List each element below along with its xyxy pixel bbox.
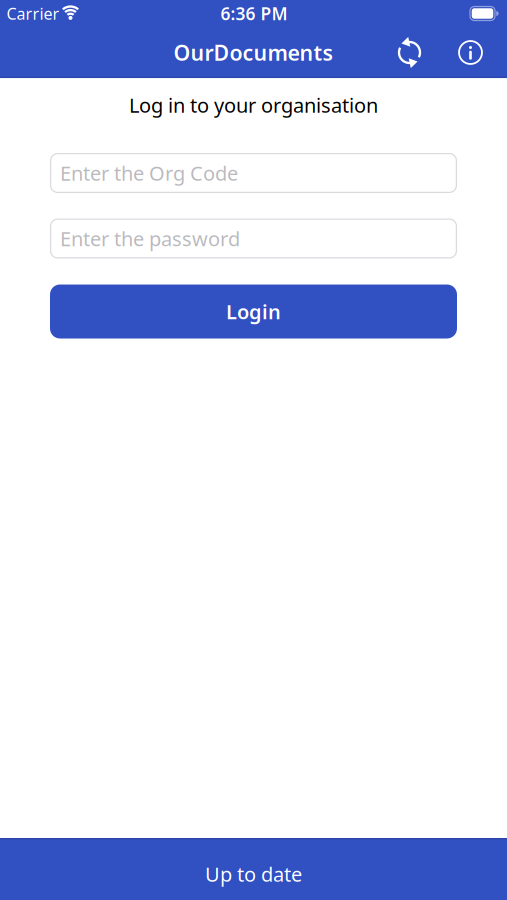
staticText: 6:36 PM (220, 2, 287, 25)
staticText: Login (226, 298, 281, 325)
staticText: Enter the Org Code (60, 160, 238, 186)
button[interactable]: Login (50, 284, 457, 338)
staticText: Carrier (6, 3, 59, 24)
button[interactable]: Refresh (394, 37, 424, 67)
staticText: OurDocuments (173, 38, 333, 67)
button[interactable]: Enter the password (50, 218, 457, 258)
staticText: Log in to your organisation (129, 92, 378, 118)
staticText: Up to date (205, 861, 302, 887)
button[interactable]: Info (459, 41, 482, 64)
button[interactable]: Enter the Org Code (50, 153, 457, 193)
staticText: Enter the password (60, 225, 240, 252)
